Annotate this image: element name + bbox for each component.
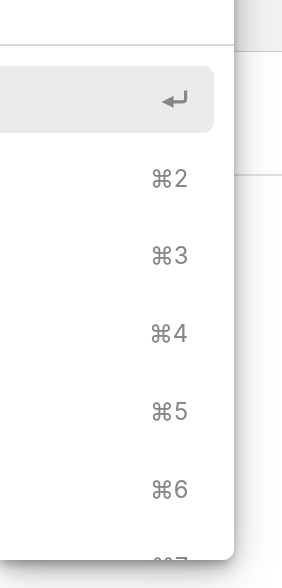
button[interactable]: ⌘6 (0, 456, 214, 522)
staticText: ⌘4 (149, 319, 189, 348)
staticText: ⌘3 (150, 241, 189, 270)
staticText: ⌘2 (150, 164, 189, 193)
staticText: ⌘7 (151, 552, 189, 560)
staticText: ⌘6 (150, 475, 189, 504)
button[interactable]: ⌘2 (0, 145, 214, 211)
button[interactable]: ⌘5 (0, 378, 214, 444)
button[interactable]: Return (0, 66, 214, 133)
button[interactable]: ⌘4 (0, 300, 214, 366)
button[interactable]: ⌘3 (0, 222, 214, 288)
staticText: ⌘5 (150, 397, 189, 426)
other: Return (161, 90, 187, 108)
button[interactable]: ⌘7 (0, 533, 214, 560)
